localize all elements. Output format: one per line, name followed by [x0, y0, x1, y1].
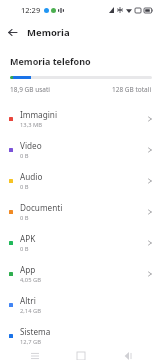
button[interactable]: Sistema — [0, 320, 162, 351]
staticText: 2,14 GB — [20, 307, 41, 315]
button[interactable]: App — [0, 258, 162, 289]
button[interactable]: Immagini — [0, 103, 162, 134]
button[interactable]: Audio — [0, 165, 162, 196]
staticText: 0 B — [20, 152, 29, 160]
staticText: APK — [20, 233, 36, 244]
staticText: 13,3 MB — [20, 121, 43, 129]
staticText: 12,7 GB — [20, 338, 41, 346]
staticText: 0 B — [20, 245, 29, 253]
staticText: Immagini — [20, 109, 57, 120]
staticText: 0 B — [20, 214, 29, 222]
staticText: Audio — [20, 171, 43, 182]
staticText: 4,05 GB — [20, 276, 41, 284]
button[interactable]: Altri — [0, 289, 162, 320]
button[interactable]: Indietro — [0, 20, 24, 44]
button[interactable]: Video — [0, 134, 162, 165]
staticText: Altri — [20, 295, 36, 306]
button[interactable]: Recenti — [24, 351, 46, 360]
staticText: 12:29 — [21, 5, 41, 15]
staticText: Memoria telefono — [10, 55, 91, 67]
staticText: Sistema — [20, 326, 51, 337]
button[interactable]: Documenti — [0, 196, 162, 227]
staticText: App — [20, 264, 36, 275]
staticText: Video — [20, 140, 42, 151]
staticText: 0 B — [20, 183, 29, 191]
button[interactable]: Home — [70, 351, 92, 360]
staticText: 128 GB totali — [112, 85, 152, 94]
staticText: Memoria — [27, 26, 70, 39]
staticText: 18,9 GB usati — [10, 85, 51, 94]
button[interactable]: APK — [0, 227, 162, 258]
staticText: Documenti — [20, 202, 63, 213]
button[interactable]: Indietro — [116, 351, 138, 360]
